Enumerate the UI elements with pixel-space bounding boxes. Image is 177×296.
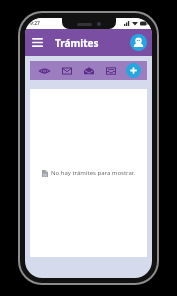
button[interactable]: Archive: [103, 63, 119, 79]
button[interactable]: Preview: [36, 63, 52, 79]
button[interactable]: Open navigation menu: [28, 33, 47, 52]
button[interactable]: Received mail: [59, 63, 75, 79]
button[interactable]: Account profile: [130, 34, 147, 51]
staticText: Trámites: [55, 36, 99, 50]
staticText: No hay trámites para mostrar.: [51, 169, 135, 177]
button[interactable]: Add new procedure: [126, 63, 141, 78]
button[interactable]: Opened mail: [81, 63, 97, 79]
staticText: 9:27: [30, 20, 40, 27]
